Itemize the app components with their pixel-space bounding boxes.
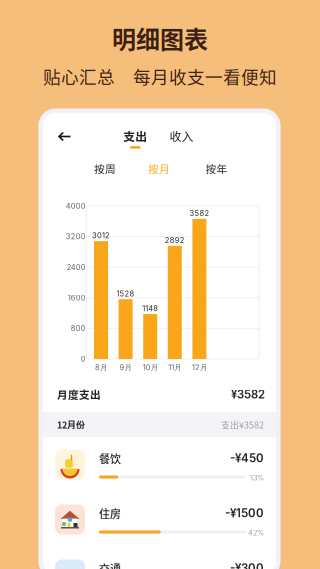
button[interactable]: 餐饮 <box>43 437 276 492</box>
button[interactable]: 支出 <box>115 125 155 151</box>
button[interactable]: 收入 <box>161 125 201 151</box>
button[interactable]: 按月 <box>140 157 178 179</box>
button[interactable]: Back <box>51 123 77 149</box>
staticText: 8月 <box>95 363 107 372</box>
staticText: 1528 <box>117 289 135 298</box>
staticText: 交通 <box>99 561 121 569</box>
staticText: 1148 <box>142 304 158 313</box>
staticText: 1600 <box>68 293 86 302</box>
staticText: 2892 <box>165 236 185 245</box>
staticText: 10月 <box>143 363 158 372</box>
staticText: 支出¥3582 <box>221 418 264 431</box>
staticText: 3200 <box>66 232 86 241</box>
staticText: 按周 <box>94 161 116 176</box>
staticText: 贴心汇总 每月收支一看便知 <box>43 63 277 89</box>
staticText: 按年 <box>205 161 227 176</box>
staticText: 支出 <box>123 127 147 144</box>
staticText: 13% <box>250 474 264 482</box>
staticText: 11月 <box>168 363 181 372</box>
button[interactable]: 交通 <box>43 547 276 569</box>
staticText: 月度支出 <box>57 386 101 402</box>
staticText: ¥3582 <box>231 388 265 401</box>
staticText: 3012 <box>92 231 110 240</box>
staticText: 12月份 <box>57 418 85 431</box>
staticText: 按月 <box>148 161 170 176</box>
staticText: -¥1500 <box>225 506 264 520</box>
staticText: -¥300 <box>230 561 264 569</box>
staticText: 明细图表 <box>112 21 208 55</box>
staticText: 9月 <box>120 363 132 372</box>
staticText: 4000 <box>66 201 86 210</box>
staticText: -¥450 <box>230 451 264 465</box>
button[interactable]: 按年 <box>197 157 235 179</box>
staticText: 餐饮 <box>99 451 121 466</box>
button[interactable]: 按周 <box>86 157 124 179</box>
staticText: 42% <box>248 529 264 537</box>
staticText: 3582 <box>189 209 209 218</box>
button[interactable]: 住房 <box>43 492 276 547</box>
staticText: 住房 <box>99 506 121 521</box>
staticText: 800 <box>71 324 86 333</box>
staticText: 12月 <box>192 363 207 372</box>
staticText: 收入 <box>169 127 193 144</box>
staticText: 0 <box>81 354 86 363</box>
staticText: 2400 <box>67 263 86 272</box>
